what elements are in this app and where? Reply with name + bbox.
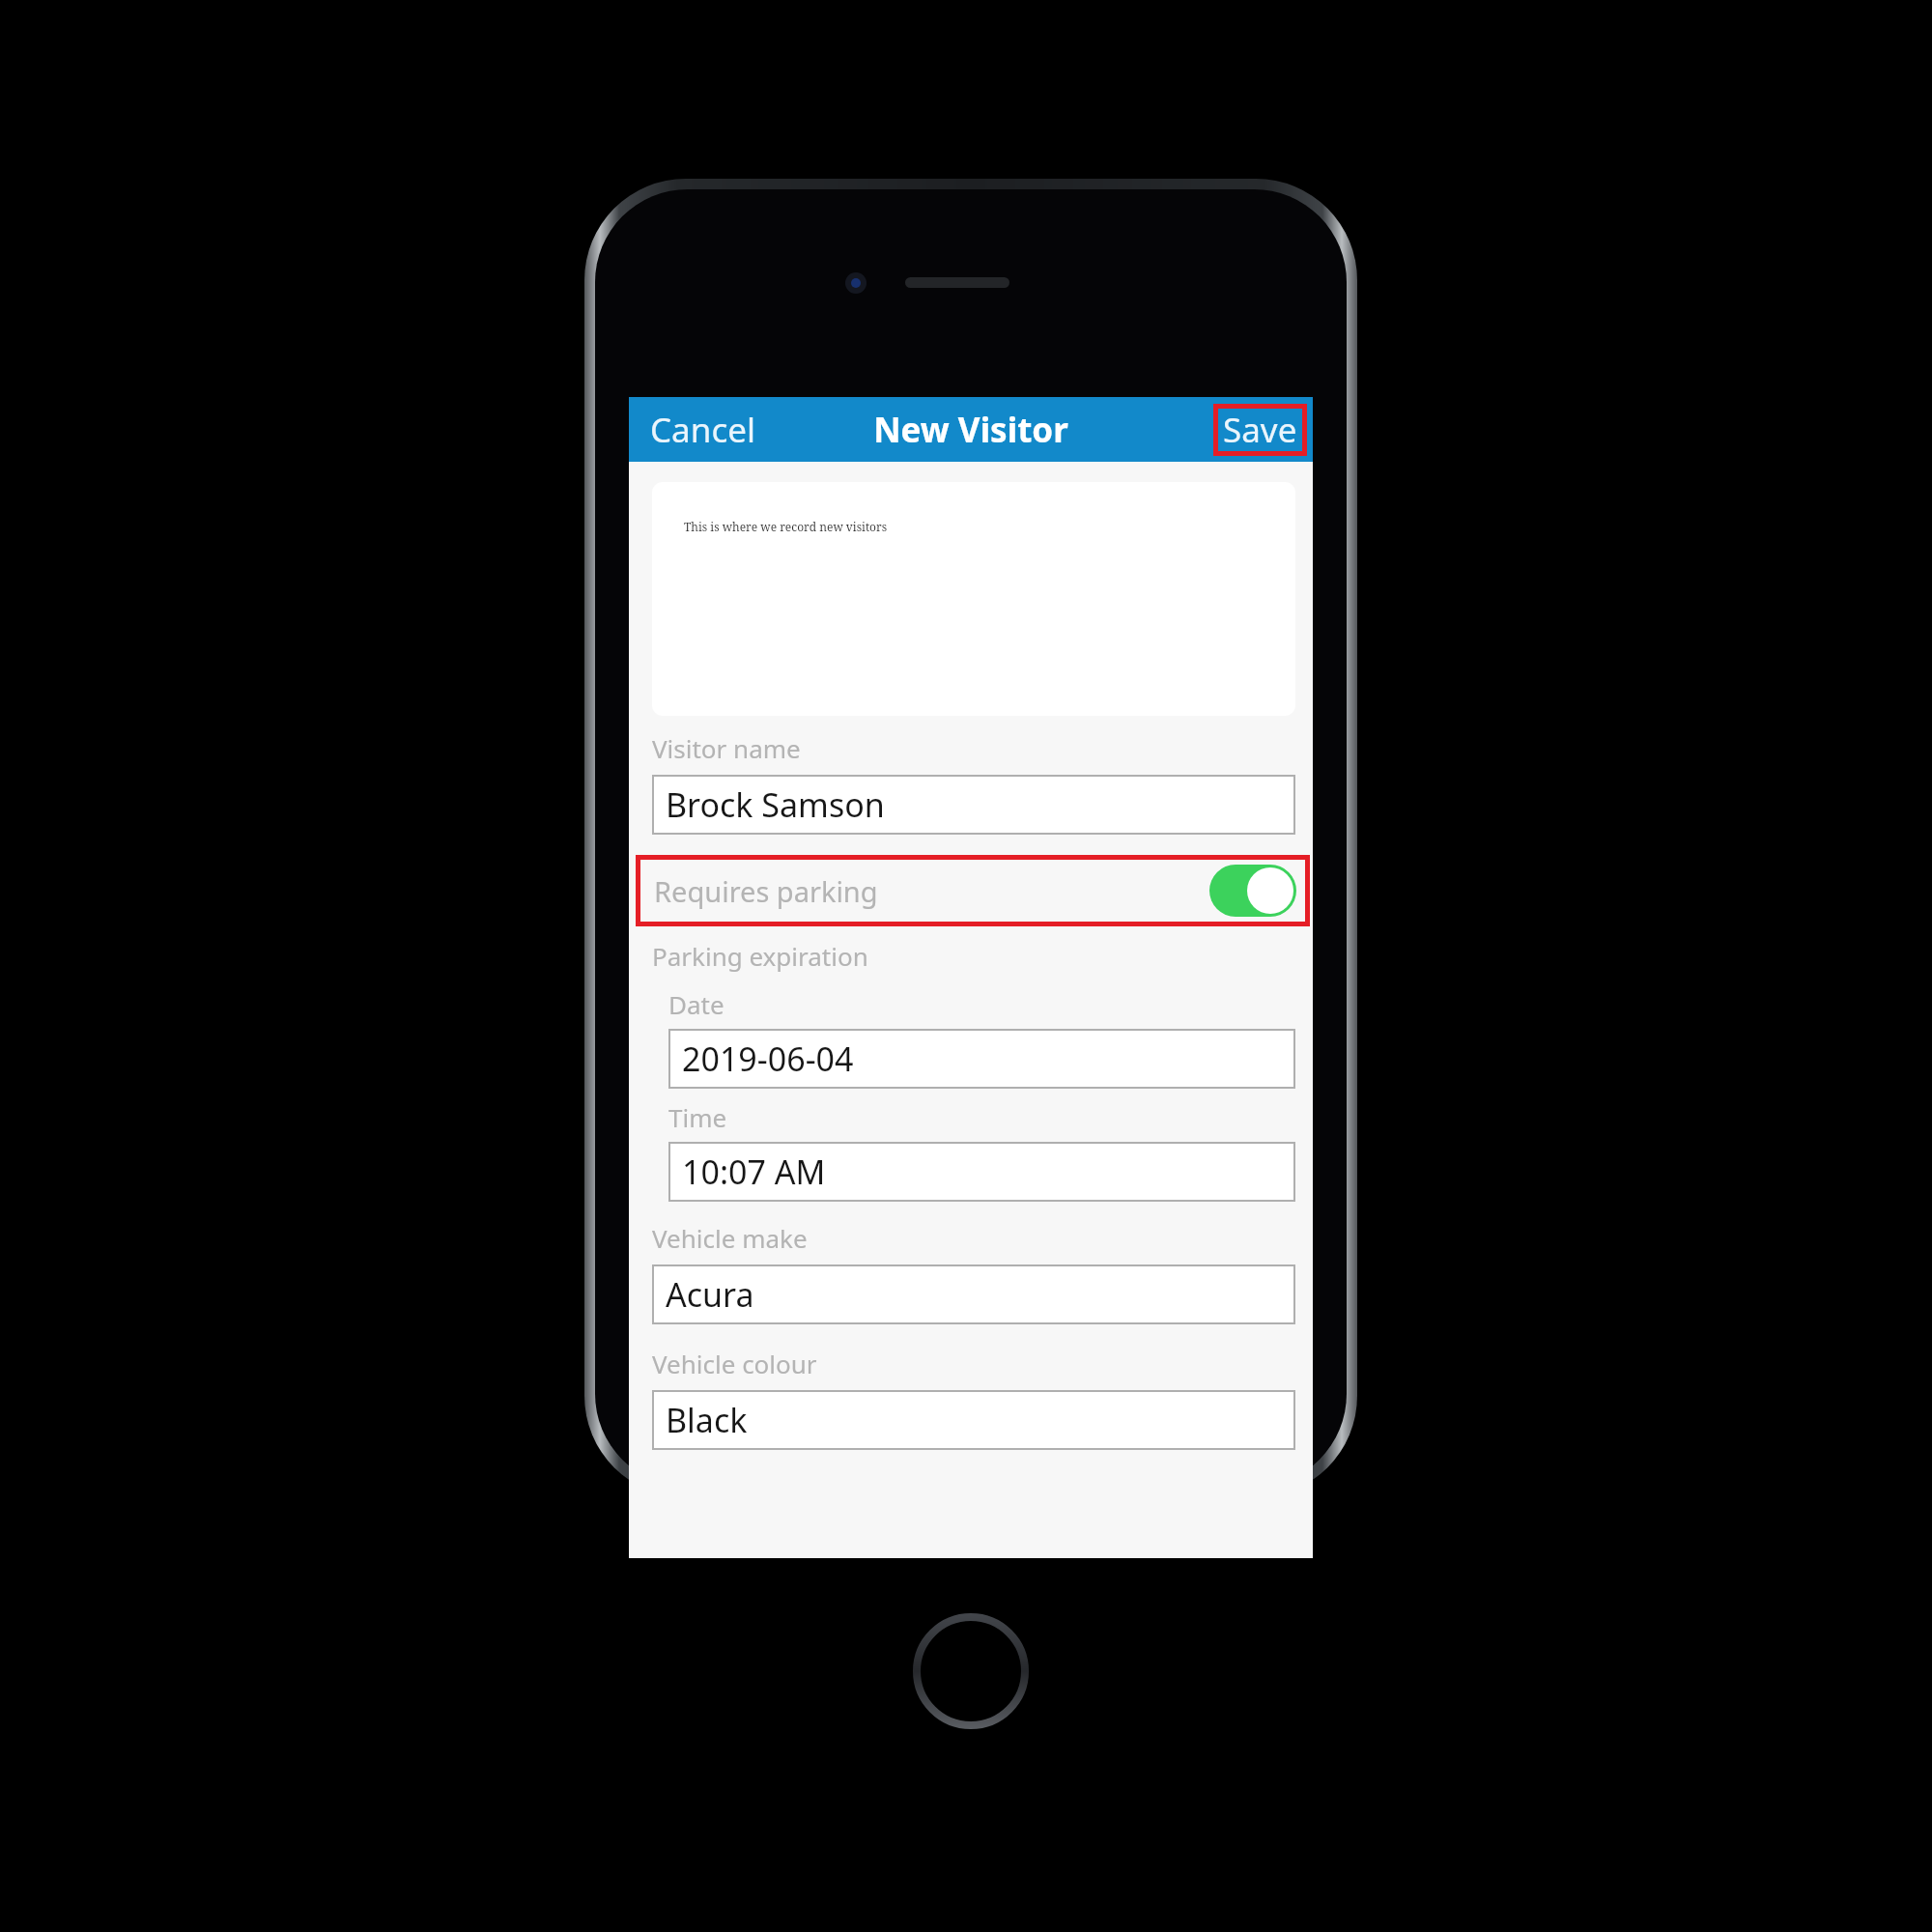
staticText: Cancel [650,407,755,453]
staticText: Time [668,1100,727,1134]
staticText: Black [666,1398,748,1442]
button[interactable]: 2019-06-04 [668,1029,1295,1089]
button[interactable]: Requires parking, on [1209,865,1296,917]
staticText: Requires parking [654,872,878,910]
button[interactable]: Cancel [642,399,763,461]
staticText: Visitor name [652,731,801,765]
button[interactable]: Acura [652,1264,1295,1324]
staticText: Vehicle colour [652,1347,817,1380]
staticText: This is where we record new visitors [684,519,888,534]
button[interactable]: This is where we record new visitors [652,482,1295,716]
staticText: Acura [666,1272,754,1317]
button[interactable]: Brock Samson [652,775,1295,835]
staticText: Vehicle make [652,1221,808,1255]
staticText: Save [1223,407,1297,453]
staticText: New Visitor [873,407,1068,453]
other: Home button [913,1613,1029,1729]
staticText: Date [668,987,724,1021]
button[interactable]: Requires parking [636,855,1310,926]
staticText: 2019-06-04 [682,1037,854,1081]
button[interactable]: Black [652,1390,1295,1450]
button[interactable]: 10:07 AM [668,1142,1295,1202]
staticText: 10:07 AM [682,1150,826,1194]
button[interactable]: Save [1213,404,1307,456]
staticText: Brock Samson [666,782,885,827]
staticText: Parking expiration [652,939,868,973]
